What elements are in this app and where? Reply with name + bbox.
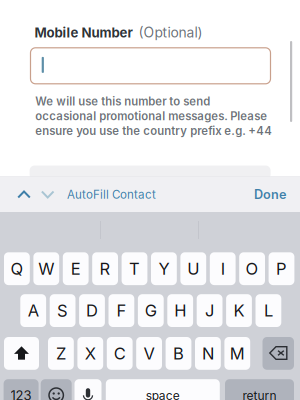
button[interactable]: Shift xyxy=(4,337,39,370)
staticText: Z xyxy=(56,343,66,363)
staticText: H xyxy=(174,301,186,321)
button[interactable]: A xyxy=(20,294,46,327)
staticText: N xyxy=(202,343,214,363)
staticText: Done xyxy=(254,187,286,202)
staticText: C xyxy=(114,343,126,363)
staticText: X xyxy=(85,343,96,363)
staticText: space xyxy=(146,388,180,400)
staticText: Q xyxy=(10,259,23,279)
staticText: A xyxy=(28,301,39,321)
button[interactable]: H xyxy=(167,294,193,327)
button[interactable]: K xyxy=(226,294,252,327)
button[interactable]: B xyxy=(166,337,191,370)
button[interactable]: U xyxy=(180,252,206,285)
button[interactable]: S xyxy=(50,294,75,327)
button[interactable]: Return xyxy=(225,379,294,400)
staticText: Y xyxy=(158,259,169,279)
staticText: M xyxy=(230,343,245,363)
button[interactable]: G xyxy=(138,294,164,327)
button[interactable]: Dictate xyxy=(74,379,101,400)
button[interactable]: N xyxy=(195,337,221,370)
button[interactable]: T xyxy=(122,252,147,285)
staticText: (Optional) xyxy=(138,24,202,41)
button[interactable]: C xyxy=(107,337,133,370)
staticText: D xyxy=(86,301,98,321)
staticText: R xyxy=(100,259,111,279)
staticText: P xyxy=(276,259,287,279)
button[interactable]: Previous field xyxy=(10,180,38,209)
button[interactable]: X xyxy=(77,337,103,370)
staticText: 123 xyxy=(11,388,32,400)
staticText: U xyxy=(187,259,199,279)
button[interactable]: F xyxy=(108,294,134,327)
staticText: B xyxy=(173,343,184,363)
button[interactable]: M xyxy=(224,337,250,370)
staticText: I xyxy=(221,259,225,279)
staticText: AutoFill Contact xyxy=(67,187,156,201)
button[interactable]: P xyxy=(269,252,294,285)
button[interactable]: Next field xyxy=(34,180,62,209)
staticText: We will use this number to send xyxy=(35,94,210,108)
staticText: ensure you use the country prefix e.g. +… xyxy=(35,124,272,138)
button[interactable]: V xyxy=(136,337,162,370)
button[interactable]: D xyxy=(79,294,105,327)
staticText: S xyxy=(57,301,68,321)
button[interactable]: Done xyxy=(254,180,286,209)
staticText: K xyxy=(233,301,244,321)
button[interactable]: space xyxy=(106,379,220,400)
staticText: Mobile Number xyxy=(34,25,132,41)
button[interactable]: AutoFill Contact xyxy=(67,180,156,209)
button[interactable]: J xyxy=(197,294,222,327)
staticText: O xyxy=(246,259,259,279)
button[interactable]: O xyxy=(239,252,265,285)
staticText: return xyxy=(242,388,276,400)
staticText: V xyxy=(144,343,155,363)
staticText: T xyxy=(129,259,140,279)
button[interactable]: E xyxy=(63,252,89,285)
staticText: J xyxy=(205,301,214,321)
staticText: W xyxy=(38,259,54,279)
button[interactable]: R xyxy=(92,252,118,285)
button[interactable]: Number keyboard xyxy=(4,379,39,400)
button[interactable]: I xyxy=(210,252,236,285)
staticText: F xyxy=(116,301,126,321)
staticText: E xyxy=(71,259,81,279)
button[interactable]: Y xyxy=(151,252,177,285)
staticText: G xyxy=(145,301,157,321)
button[interactable]: Emoji xyxy=(41,379,72,400)
button[interactable]: Q xyxy=(4,252,30,285)
button[interactable]: Z xyxy=(48,337,74,370)
staticText: L xyxy=(264,301,273,321)
button[interactable]: L xyxy=(255,294,281,327)
button[interactable]: Delete xyxy=(262,337,294,370)
staticText: occasional promotional messages. Please xyxy=(35,109,267,123)
button[interactable]: W xyxy=(33,252,59,285)
